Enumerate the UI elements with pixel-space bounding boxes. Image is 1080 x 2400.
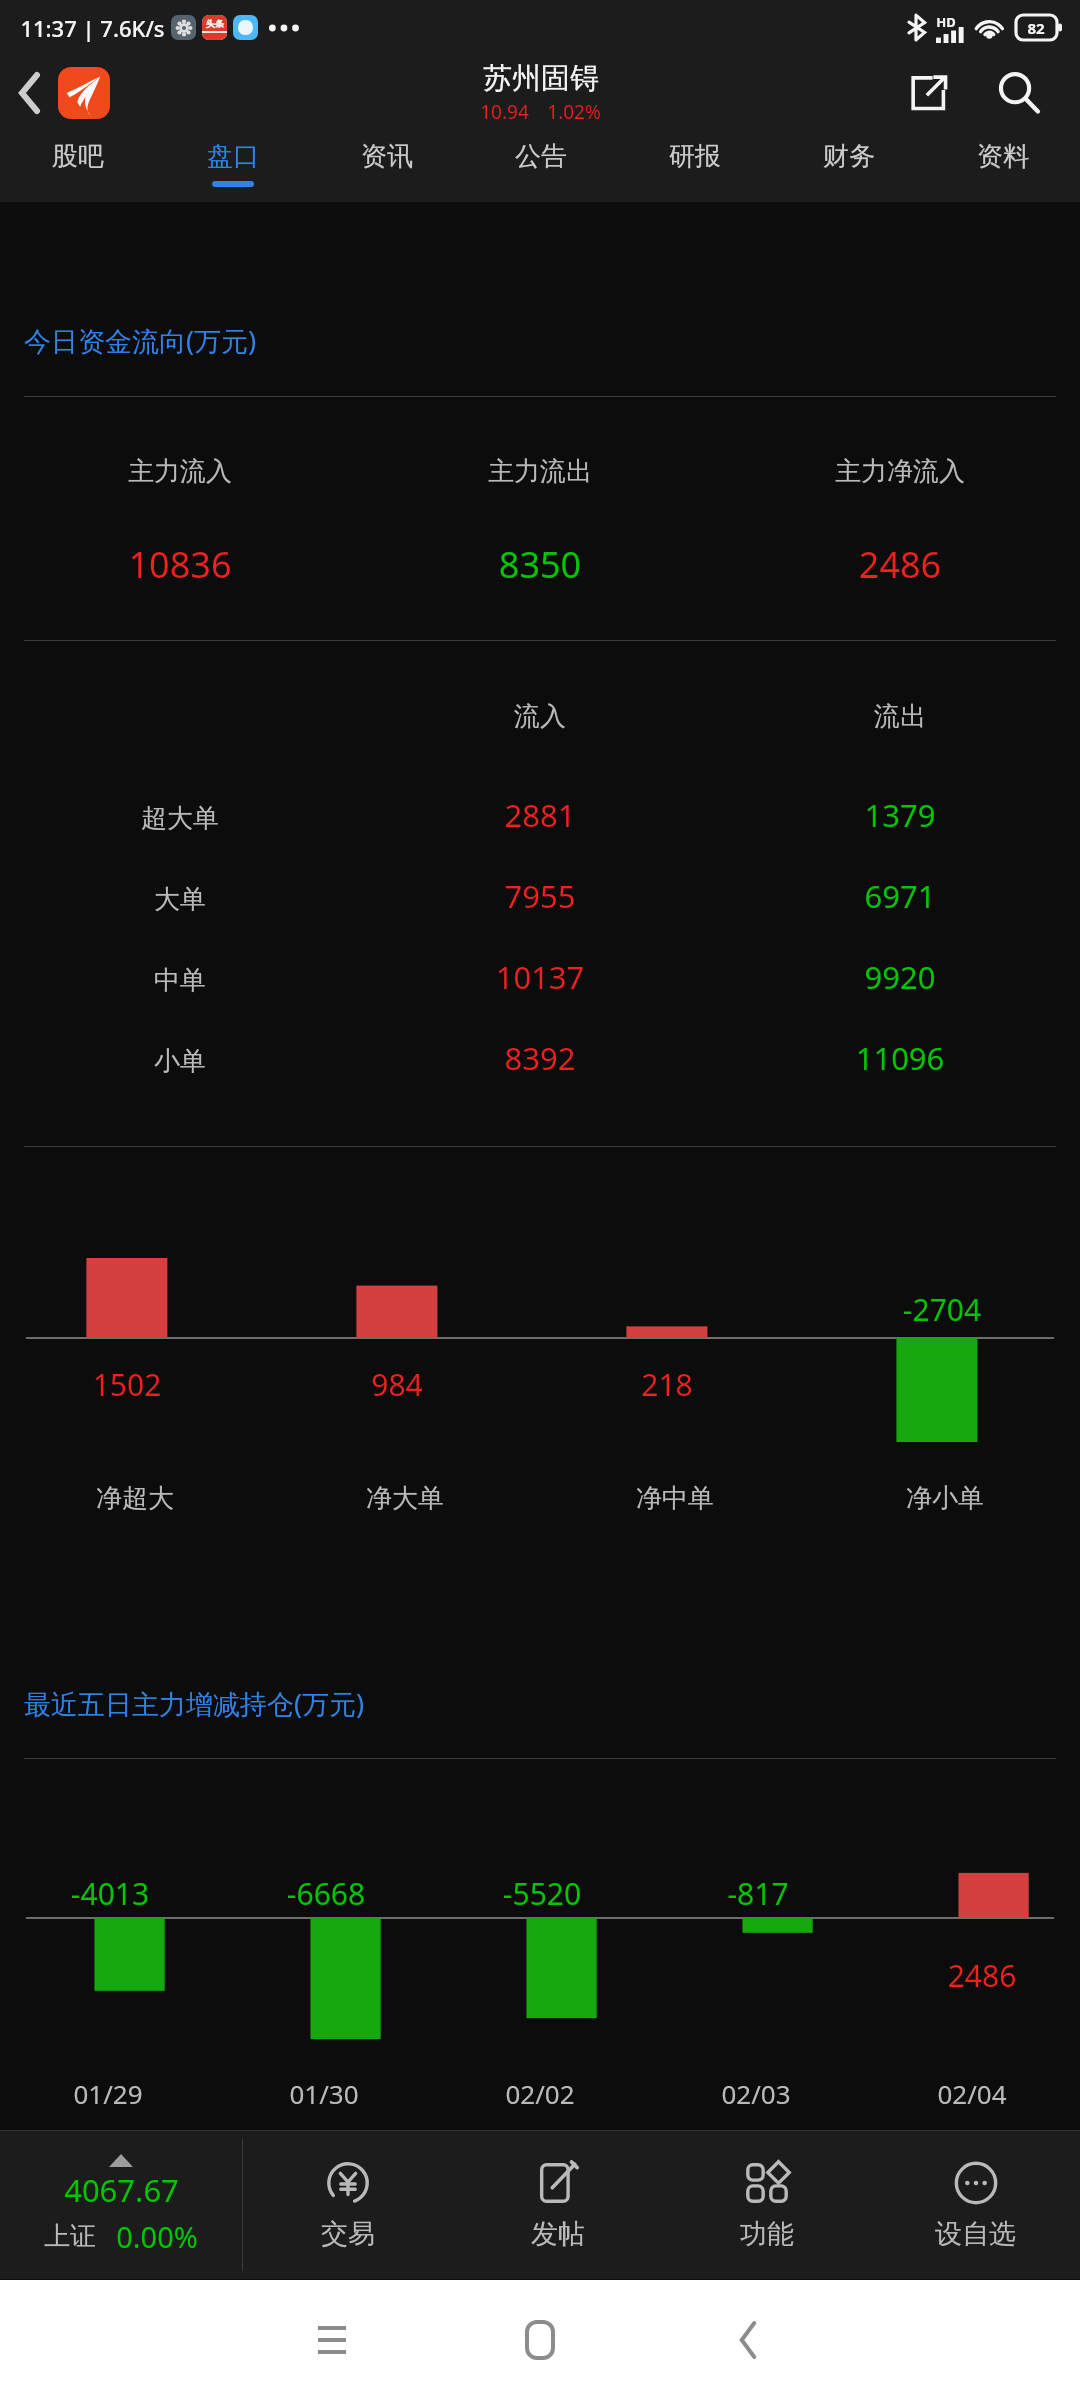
staticText: 公告 bbox=[515, 140, 567, 173]
staticText: 小单 bbox=[0, 1045, 360, 1078]
staticText: 01/29 bbox=[0, 2076, 216, 2111]
staticText: 盘口 bbox=[207, 140, 259, 173]
staticText: 净小单 bbox=[810, 1482, 1080, 1515]
staticText: 6971 bbox=[720, 875, 1080, 917]
staticText: 0.00% bbox=[116, 2217, 198, 2256]
button[interactable]: 设自选 bbox=[871, 2131, 1080, 2279]
staticText: 主力流出 bbox=[360, 455, 720, 488]
staticText: -2704 bbox=[807, 1289, 1077, 1330]
staticText: 10836 bbox=[0, 540, 360, 589]
button[interactable]: 股吧 bbox=[0, 130, 155, 202]
staticText: HD bbox=[936, 13, 956, 31]
staticText: 2881 bbox=[360, 794, 720, 836]
button[interactable]: 资讯 bbox=[310, 130, 464, 202]
staticText: 11:37 | 7.6K/s bbox=[20, 13, 165, 43]
staticText: 上证 bbox=[44, 2220, 96, 2253]
staticText: 超大单 bbox=[0, 802, 360, 835]
staticText: -817 bbox=[650, 1873, 866, 1914]
button[interactable]: Back bbox=[0, 55, 60, 130]
button[interactable]: 4067.67 bbox=[0, 2131, 242, 2279]
staticText: 净大单 bbox=[270, 1482, 540, 1515]
button[interactable]: Home bbox=[436, 2280, 644, 2400]
button[interactable]: Back bbox=[644, 2280, 852, 2400]
button[interactable]: 盘口 bbox=[155, 130, 310, 202]
button[interactable]: 财务 bbox=[772, 130, 926, 202]
staticText: 8350 bbox=[360, 540, 720, 589]
staticText: 9920 bbox=[720, 956, 1080, 998]
staticText: 净超大 bbox=[0, 1482, 270, 1515]
staticText: 股吧 bbox=[52, 140, 104, 173]
staticText: 主力净流入 bbox=[720, 455, 1080, 488]
staticText: 流出 bbox=[720, 700, 1080, 733]
staticText: 1379 bbox=[720, 794, 1080, 836]
staticText: 82 bbox=[1027, 18, 1045, 38]
staticText: 净中单 bbox=[540, 1482, 810, 1515]
staticText: 1.02% bbox=[547, 99, 601, 125]
staticText: 资料 bbox=[977, 140, 1029, 173]
staticText: 最近五日主力增减持仓(万元) bbox=[24, 1685, 365, 1722]
staticText: 大单 bbox=[0, 883, 360, 916]
staticText: 10.94 bbox=[480, 99, 529, 125]
button[interactable]: 交易 bbox=[243, 2131, 453, 2279]
staticText: 资讯 bbox=[361, 140, 413, 173]
staticText: 发帖 bbox=[531, 2217, 585, 2251]
staticText: 4067.67 bbox=[64, 2169, 179, 2211]
staticText: 11096 bbox=[720, 1037, 1080, 1079]
staticText: 主力流入 bbox=[0, 455, 360, 488]
staticText: 头条 bbox=[206, 18, 224, 29]
button[interactable]: Home logo bbox=[58, 67, 110, 119]
staticText: 流入 bbox=[360, 700, 720, 733]
staticText: 研报 bbox=[669, 140, 721, 173]
button[interactable]: 研报 bbox=[618, 130, 772, 202]
button[interactable]: Recent apps bbox=[228, 2280, 436, 2400]
staticText: 218 bbox=[532, 1364, 802, 1405]
button[interactable]: Share bbox=[896, 60, 962, 126]
staticText: 1502 bbox=[0, 1364, 262, 1405]
staticText: 2486 bbox=[874, 1955, 1080, 1996]
staticText: 设自选 bbox=[935, 2217, 1016, 2251]
staticText: 02/03 bbox=[648, 2076, 864, 2111]
staticText: 7955 bbox=[360, 875, 720, 917]
staticText: -4013 bbox=[2, 1873, 218, 1914]
staticText: -5520 bbox=[434, 1873, 650, 1914]
staticText: 苏州固锝 bbox=[483, 60, 599, 97]
button[interactable]: 发帖 bbox=[453, 2131, 662, 2279]
button[interactable]: Search bbox=[982, 56, 1056, 130]
staticText: 交易 bbox=[321, 2217, 375, 2251]
button[interactable]: 公告 bbox=[464, 130, 618, 202]
staticText: 2486 bbox=[720, 540, 1080, 589]
staticText: 10137 bbox=[360, 956, 720, 998]
staticText: 02/04 bbox=[864, 2076, 1080, 2111]
staticText: 984 bbox=[262, 1364, 532, 1405]
staticText: 财务 bbox=[823, 140, 875, 173]
staticText: 今日资金流向(万元) bbox=[24, 322, 257, 359]
staticText: 中单 bbox=[0, 964, 360, 997]
button[interactable]: 功能 bbox=[662, 2131, 871, 2279]
staticText: -6668 bbox=[218, 1873, 434, 1914]
button[interactable]: 资料 bbox=[926, 130, 1080, 202]
staticText: 功能 bbox=[740, 2217, 794, 2251]
staticText: 8392 bbox=[360, 1037, 720, 1079]
staticText: 01/30 bbox=[216, 2076, 432, 2111]
staticText: 02/02 bbox=[432, 2076, 648, 2111]
